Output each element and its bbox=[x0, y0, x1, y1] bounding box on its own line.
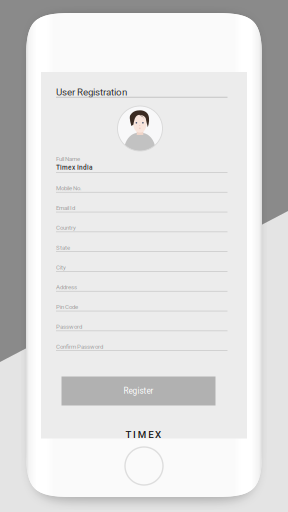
staticText: Address bbox=[56, 284, 77, 291]
staticText: Password bbox=[56, 323, 82, 330]
staticText: Full Name bbox=[56, 155, 80, 162]
button[interactable]: Register bbox=[61, 376, 215, 405]
staticText: User Registration bbox=[56, 86, 127, 98]
staticText: TIMEX bbox=[125, 429, 161, 440]
staticText: Country bbox=[56, 224, 76, 231]
staticText: Register bbox=[123, 386, 153, 396]
staticText: Email Id bbox=[56, 204, 75, 211]
staticText: Mobile No. bbox=[56, 185, 82, 192]
staticText: State bbox=[56, 244, 70, 251]
staticText: Confirm Password bbox=[56, 343, 103, 350]
staticText: City bbox=[56, 264, 66, 271]
staticText: Timex India bbox=[56, 164, 93, 171]
staticText: Pin Code bbox=[56, 303, 78, 310]
